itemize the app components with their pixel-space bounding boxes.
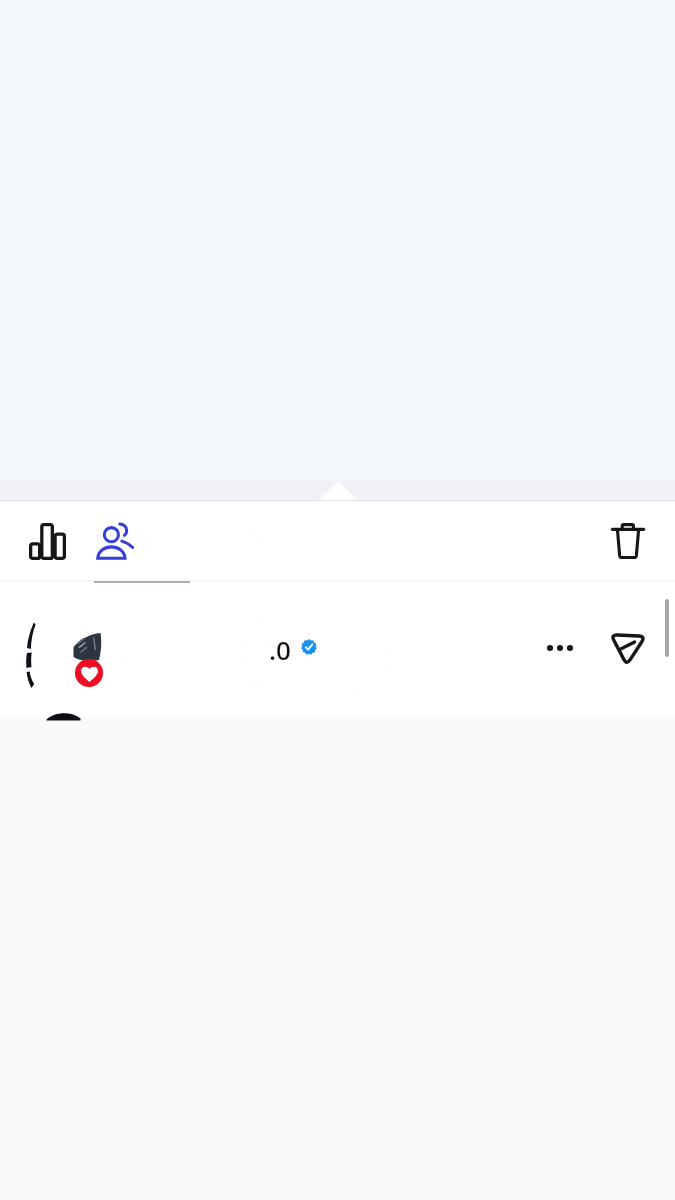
button[interactable]: Insights — [13, 507, 81, 575]
button[interactable]: Accounts — [81, 508, 149, 576]
button[interactable]: More options — [532, 620, 588, 676]
button[interactable]: Delete — [594, 507, 662, 575]
staticText: .0 — [269, 632, 291, 667]
other: Liked — [75, 659, 103, 687]
button[interactable]: Share — [594, 615, 662, 683]
